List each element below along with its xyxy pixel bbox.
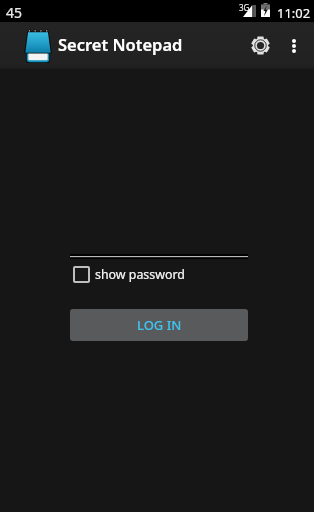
button[interactable]: Settings [240, 22, 280, 69]
button[interactable]: LOG IN [70, 309, 248, 341]
button[interactable]: show password [73, 266, 185, 283]
staticText: Secret Notepad [58, 33, 183, 55]
staticText: 11:02 [277, 4, 311, 22]
staticText: show password [95, 266, 185, 283]
staticText: 3G [239, 2, 250, 13]
staticText: LOG IN [137, 316, 182, 334]
staticText: 45 [6, 3, 23, 22]
button[interactable]: More options [280, 22, 308, 69]
